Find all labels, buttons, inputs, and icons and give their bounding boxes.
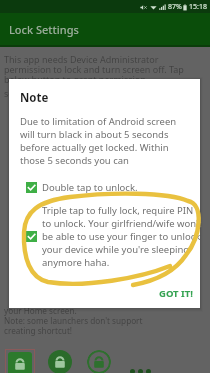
staticText: selected, then tap Activate. [4, 87, 118, 99]
staticText: 15:18 [189, 2, 207, 12]
staticText: Note [20, 90, 49, 106]
staticText: Lock Settings [9, 22, 79, 37]
staticText: Double tap to unlock. [42, 181, 138, 194]
staticText: Triple tap to fully lock, require PIN to… [42, 204, 202, 269]
staticText: 87% [168, 2, 182, 12]
staticText: This app needs Device Administrator perm… [4, 53, 206, 85]
button[interactable]: Lock outline [87, 350, 111, 373]
staticText: GOT IT! [159, 287, 193, 300]
button[interactable]: GOT IT! [155, 283, 197, 304]
button[interactable]: Lock now [48, 350, 72, 373]
button[interactable]: Lock shortcut [8, 352, 32, 373]
staticText: your Home screen. Note: some launchers d… [4, 305, 143, 336]
staticText: Due to limitation of Android screen will… [20, 115, 187, 167]
